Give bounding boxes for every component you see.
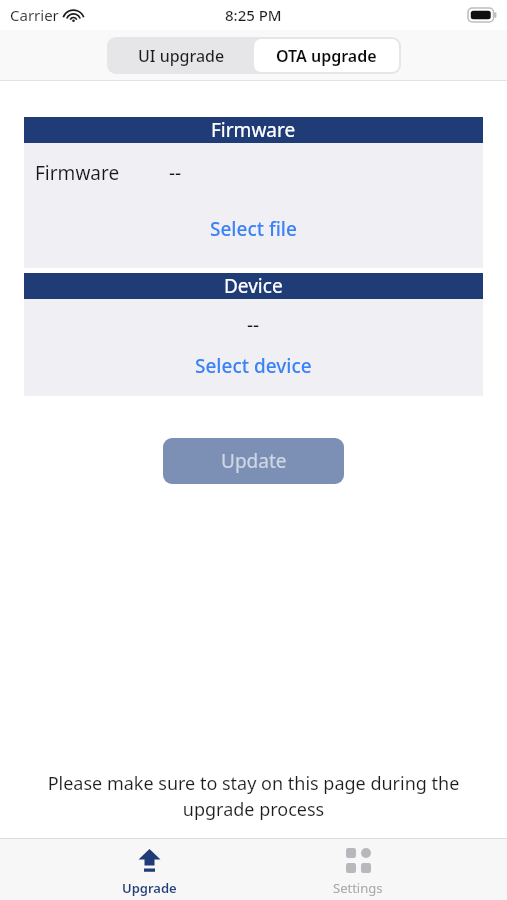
staticText: 8:25 PM — [225, 5, 282, 25]
button[interactable]: Settings — [298, 839, 418, 900]
staticText: -- — [169, 160, 182, 186]
staticText: Device — [224, 273, 283, 299]
staticText: Update — [221, 448, 287, 474]
button[interactable]: UI upgrade — [109, 39, 254, 72]
staticText: Select file — [210, 216, 297, 242]
button[interactable]: OTA upgrade — [254, 39, 399, 72]
staticText: Select device — [195, 353, 312, 379]
staticText: Firmware — [35, 160, 120, 186]
button[interactable]: Select device — [24, 351, 483, 381]
staticText: -- — [247, 312, 260, 338]
staticText: Firmware — [211, 117, 296, 143]
button[interactable]: Update — [163, 438, 344, 484]
button[interactable]: Select file — [24, 203, 483, 254]
staticText: UI upgrade — [138, 45, 225, 67]
staticText: Upgrade — [122, 879, 177, 897]
staticText: Please make sure to stay on this page du… — [20, 771, 487, 822]
staticText: Settings — [333, 879, 383, 897]
staticText: OTA upgrade — [276, 45, 377, 67]
button[interactable]: Upgrade — [89, 839, 209, 900]
staticText: Carrier — [10, 5, 59, 25]
